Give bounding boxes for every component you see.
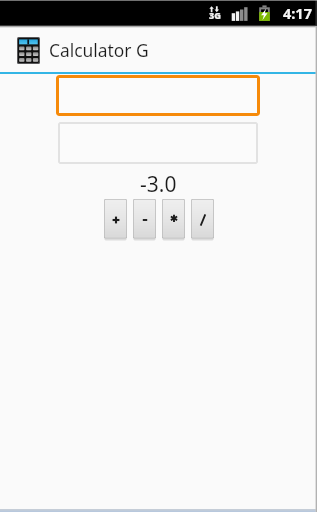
button[interactable]: First number input (56, 75, 260, 116)
button[interactable]: Divide (191, 199, 214, 240)
staticText: -3.0 (140, 170, 177, 199)
staticText: Calculator G (49, 38, 149, 62)
button[interactable]: Minus (133, 199, 156, 240)
staticText: 3G (209, 9, 221, 21)
button[interactable]: Second number input (58, 122, 258, 164)
button[interactable]: Plus (104, 199, 127, 240)
staticText: 4:17 (283, 3, 312, 23)
button[interactable]: Multiply (162, 199, 185, 240)
